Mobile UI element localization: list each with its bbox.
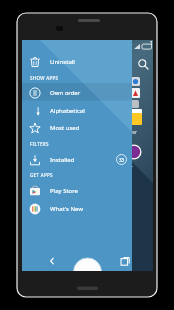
staticText: What's New: [50, 205, 84, 213]
button[interactable]: Back: [42, 251, 62, 271]
button[interactable]: Alphabetical: [22, 102, 132, 119]
button[interactable]: Most used: [22, 119, 132, 136]
button[interactable]: What's New: [22, 200, 132, 217]
staticText: Own order: [50, 89, 81, 97]
staticText: nder: [126, 129, 138, 136]
button[interactable]: Own order: [22, 84, 132, 101]
staticText: Most used: [50, 124, 80, 132]
staticText: er: [128, 164, 133, 171]
staticText: Installed: [50, 156, 75, 164]
staticText: Uninstall: [50, 58, 75, 66]
staticText: 15:22: [150, 40, 153, 47]
button[interactable]: Installed: [22, 151, 132, 168]
button[interactable]: Uninstall: [22, 53, 132, 70]
staticText: Play Store: [50, 187, 78, 195]
staticText: SHOW APPS: [30, 75, 59, 81]
button[interactable]: Recent apps: [115, 251, 135, 271]
button[interactable]: Search: [133, 54, 153, 74]
staticText: GET APPS: [30, 172, 53, 178]
staticText: Alphabetical: [50, 107, 85, 115]
staticText: 33: [119, 157, 125, 163]
staticText: FILTERS: [30, 141, 49, 147]
button[interactable]: Play Store: [22, 182, 132, 199]
